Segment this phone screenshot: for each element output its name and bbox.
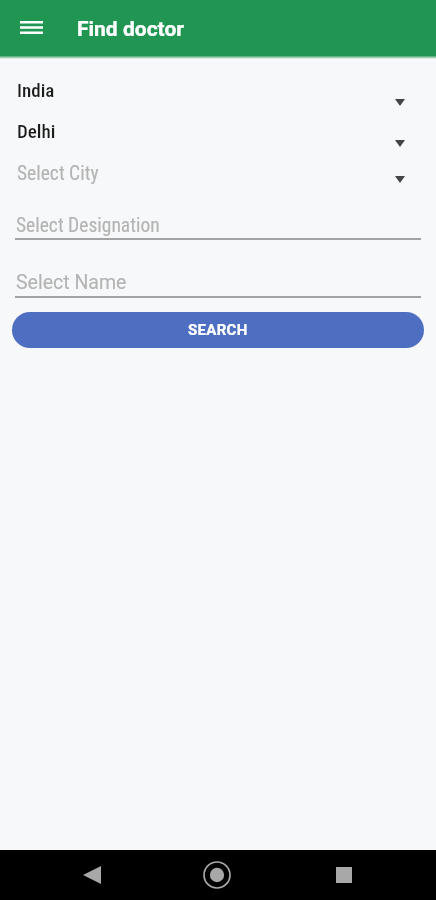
- button[interactable]: Home: [195, 850, 239, 900]
- staticText: Select Designation: [16, 214, 160, 237]
- staticText: SEARCH: [188, 321, 248, 339]
- button[interactable]: SEARCH: [12, 312, 424, 348]
- button[interactable]: Open navigation menu: [8, 4, 54, 50]
- staticText: Select City: [17, 162, 99, 185]
- button[interactable]: Recent apps: [322, 850, 366, 900]
- staticText: Delhi: [17, 120, 56, 142]
- button[interactable]: Select Designation: [0, 206, 436, 240]
- staticText: India: [17, 79, 55, 101]
- button[interactable]: Select Name: [0, 263, 436, 297]
- button[interactable]: Back: [70, 850, 113, 900]
- button[interactable]: India: [0, 76, 436, 117]
- button[interactable]: Select City: [0, 159, 436, 200]
- staticText: Select Name: [16, 271, 127, 294]
- staticText: Find doctor: [77, 17, 184, 42]
- button[interactable]: Delhi: [0, 117, 436, 158]
